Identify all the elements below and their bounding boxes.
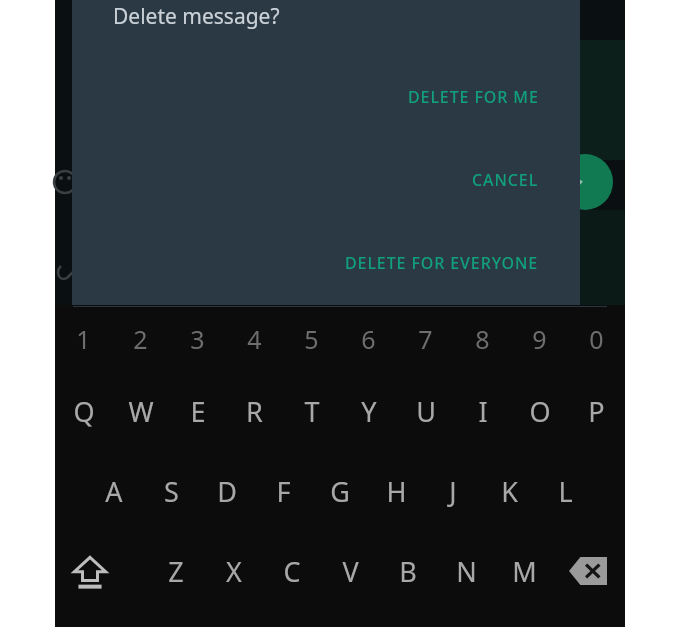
staticText: D (217, 473, 237, 510)
button[interactable]: 4 (226, 315, 283, 363)
button[interactable]: Shift (57, 543, 123, 599)
staticText: K (501, 473, 518, 510)
staticText: 8 (475, 322, 490, 356)
staticText: 2 (133, 322, 148, 356)
staticText: G (330, 473, 350, 510)
button[interactable]: Q (55, 383, 112, 439)
staticText: 6 (361, 322, 376, 356)
staticText: N (456, 553, 477, 590)
staticText: T (304, 393, 320, 430)
button[interactable]: F (255, 463, 311, 519)
staticText: 4 (247, 322, 262, 356)
button[interactable]: Z (147, 543, 205, 599)
staticText: P (588, 393, 605, 430)
button[interactable]: L (537, 463, 593, 519)
staticText: 3 (190, 322, 205, 356)
button[interactable]: T (283, 383, 340, 439)
button[interactable]: 2 (112, 315, 169, 363)
staticText: A (105, 473, 123, 510)
button[interactable]: 3 (169, 315, 226, 363)
button[interactable]: A (86, 463, 142, 519)
button[interactable]: Y (340, 383, 397, 439)
staticText: DELETE FOR EVERYONE (345, 252, 539, 272)
staticText: V (342, 553, 359, 590)
staticText: 0 (589, 322, 604, 356)
staticText: DELETE FOR ME (408, 86, 539, 106)
button[interactable]: S (143, 463, 199, 519)
staticText: R (246, 393, 263, 430)
button[interactable]: DELETE FOR ME (402, 83, 545, 109)
button[interactable]: 0 (568, 315, 625, 363)
button[interactable]: W (112, 383, 169, 439)
button[interactable]: N (437, 543, 495, 599)
button[interactable]: 1 (55, 315, 112, 363)
button[interactable]: 7 (397, 315, 454, 363)
staticText: J (449, 473, 457, 510)
button[interactable]: D (199, 463, 255, 519)
staticText: S (164, 473, 179, 510)
button[interactable]: CANCEL (466, 166, 545, 192)
staticText: I (478, 393, 488, 430)
staticText: L (558, 473, 573, 510)
staticText: CANCEL (472, 169, 539, 189)
staticText: Y (361, 393, 377, 430)
button[interactable]: K (481, 463, 537, 519)
staticText: E (190, 393, 206, 430)
button[interactable]: 5 (283, 315, 340, 363)
button[interactable]: E (169, 383, 226, 439)
button[interactable]: 6 (340, 315, 397, 363)
staticText: 7 (418, 322, 433, 356)
button[interactable]: C (263, 543, 321, 599)
staticText: Z (168, 553, 184, 590)
staticText: 5 (304, 322, 319, 356)
staticText: 1 (76, 322, 91, 356)
button[interactable]: Backspace (555, 543, 621, 599)
button[interactable]: I (454, 383, 511, 439)
button[interactable]: V (321, 543, 379, 599)
button[interactable]: M (495, 543, 553, 599)
button[interactable]: B (379, 543, 437, 599)
button[interactable]: 8 (454, 315, 511, 363)
staticText: B (399, 553, 417, 590)
button[interactable]: 9 (511, 315, 568, 363)
staticText: 9 (532, 322, 547, 356)
staticText: H (386, 473, 407, 510)
button[interactable]: P (568, 383, 625, 439)
staticText: Q (73, 393, 95, 430)
staticText: C (283, 553, 301, 590)
staticText: U (416, 393, 436, 430)
button[interactable]: R (226, 383, 283, 439)
staticText: Delete message? (113, 2, 280, 31)
button[interactable]: G (312, 463, 368, 519)
button[interactable]: O (511, 383, 568, 439)
button[interactable]: J (425, 463, 481, 519)
staticText: O (529, 393, 551, 430)
staticText: X (226, 553, 242, 590)
button[interactable]: U (397, 383, 454, 439)
staticText: M (512, 553, 537, 590)
staticText: F (276, 473, 291, 510)
button[interactable]: H (368, 463, 424, 519)
staticText: W (128, 393, 154, 430)
button[interactable]: X (205, 543, 263, 599)
button[interactable]: DELETE FOR EVERYONE (339, 249, 545, 275)
